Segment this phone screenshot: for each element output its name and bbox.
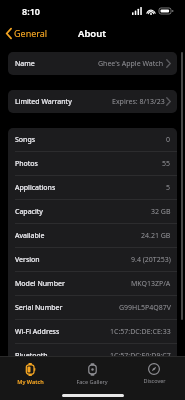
button[interactable]: Photos (8, 152, 177, 176)
button[interactable]: My Watch (0, 357, 61, 390)
staticText: Model Number (15, 279, 65, 289)
staticText: Ghee's Apple Watch (98, 59, 163, 69)
staticText: SEID (15, 375, 31, 385)
staticText: Wi-Fi Address (15, 327, 60, 337)
button[interactable]: Applications (8, 176, 177, 200)
staticText: 1C:57:DC:DE:CE:33 (110, 327, 171, 337)
button[interactable]: Wi-Fi Address (8, 320, 177, 344)
staticText: 1C:57:DC:E0:D9:C7 (110, 351, 171, 361)
staticText: Expires: 8/13/23 (112, 97, 165, 107)
button[interactable]: Serial Number (8, 296, 177, 320)
staticText: 5 (166, 183, 171, 193)
staticText: Applications (15, 183, 56, 193)
button[interactable]: Capacity (8, 200, 177, 224)
staticText: G99HL5P4Q87V (119, 303, 171, 313)
staticText: Songs (15, 135, 36, 145)
staticText: Serial Number (15, 303, 63, 313)
staticText: 9.4 (20T253) (131, 255, 171, 265)
staticText: Version (15, 255, 40, 265)
staticText: 55 (162, 159, 171, 169)
staticText: Face Gallery (76, 378, 108, 385)
staticText: Limited Warranty (15, 97, 72, 107)
staticText: 24.21 GB (141, 231, 171, 241)
staticText: General (14, 27, 48, 39)
staticText: 0 (166, 135, 171, 145)
staticText: About (78, 27, 107, 40)
button[interactable]: Available (8, 224, 177, 248)
button[interactable]: SEID (8, 368, 177, 391)
staticText: Available (15, 231, 45, 241)
button[interactable]: Songs (8, 128, 177, 152)
button[interactable]: Discover (123, 357, 185, 390)
staticText: Capacity (15, 207, 43, 217)
button[interactable]: Model Number (8, 272, 177, 296)
staticText: Name (15, 59, 35, 69)
staticText: 32 GB (151, 207, 171, 217)
button[interactable]: General (6, 27, 48, 39)
button[interactable]: Limited Warranty (8, 90, 177, 113)
staticText: My Watch (17, 378, 44, 385)
button[interactable]: Version (8, 248, 177, 272)
staticText: 8:10 (22, 5, 40, 17)
staticText: Photos (15, 159, 38, 169)
button[interactable]: Name (8, 52, 177, 75)
staticText: Bluetooth (15, 351, 48, 361)
button[interactable]: Bluetooth (8, 344, 177, 368)
button[interactable]: Face Gallery (61, 357, 123, 390)
staticText: MKQ13ZP/A (131, 279, 171, 289)
staticText: Discover (143, 377, 166, 384)
